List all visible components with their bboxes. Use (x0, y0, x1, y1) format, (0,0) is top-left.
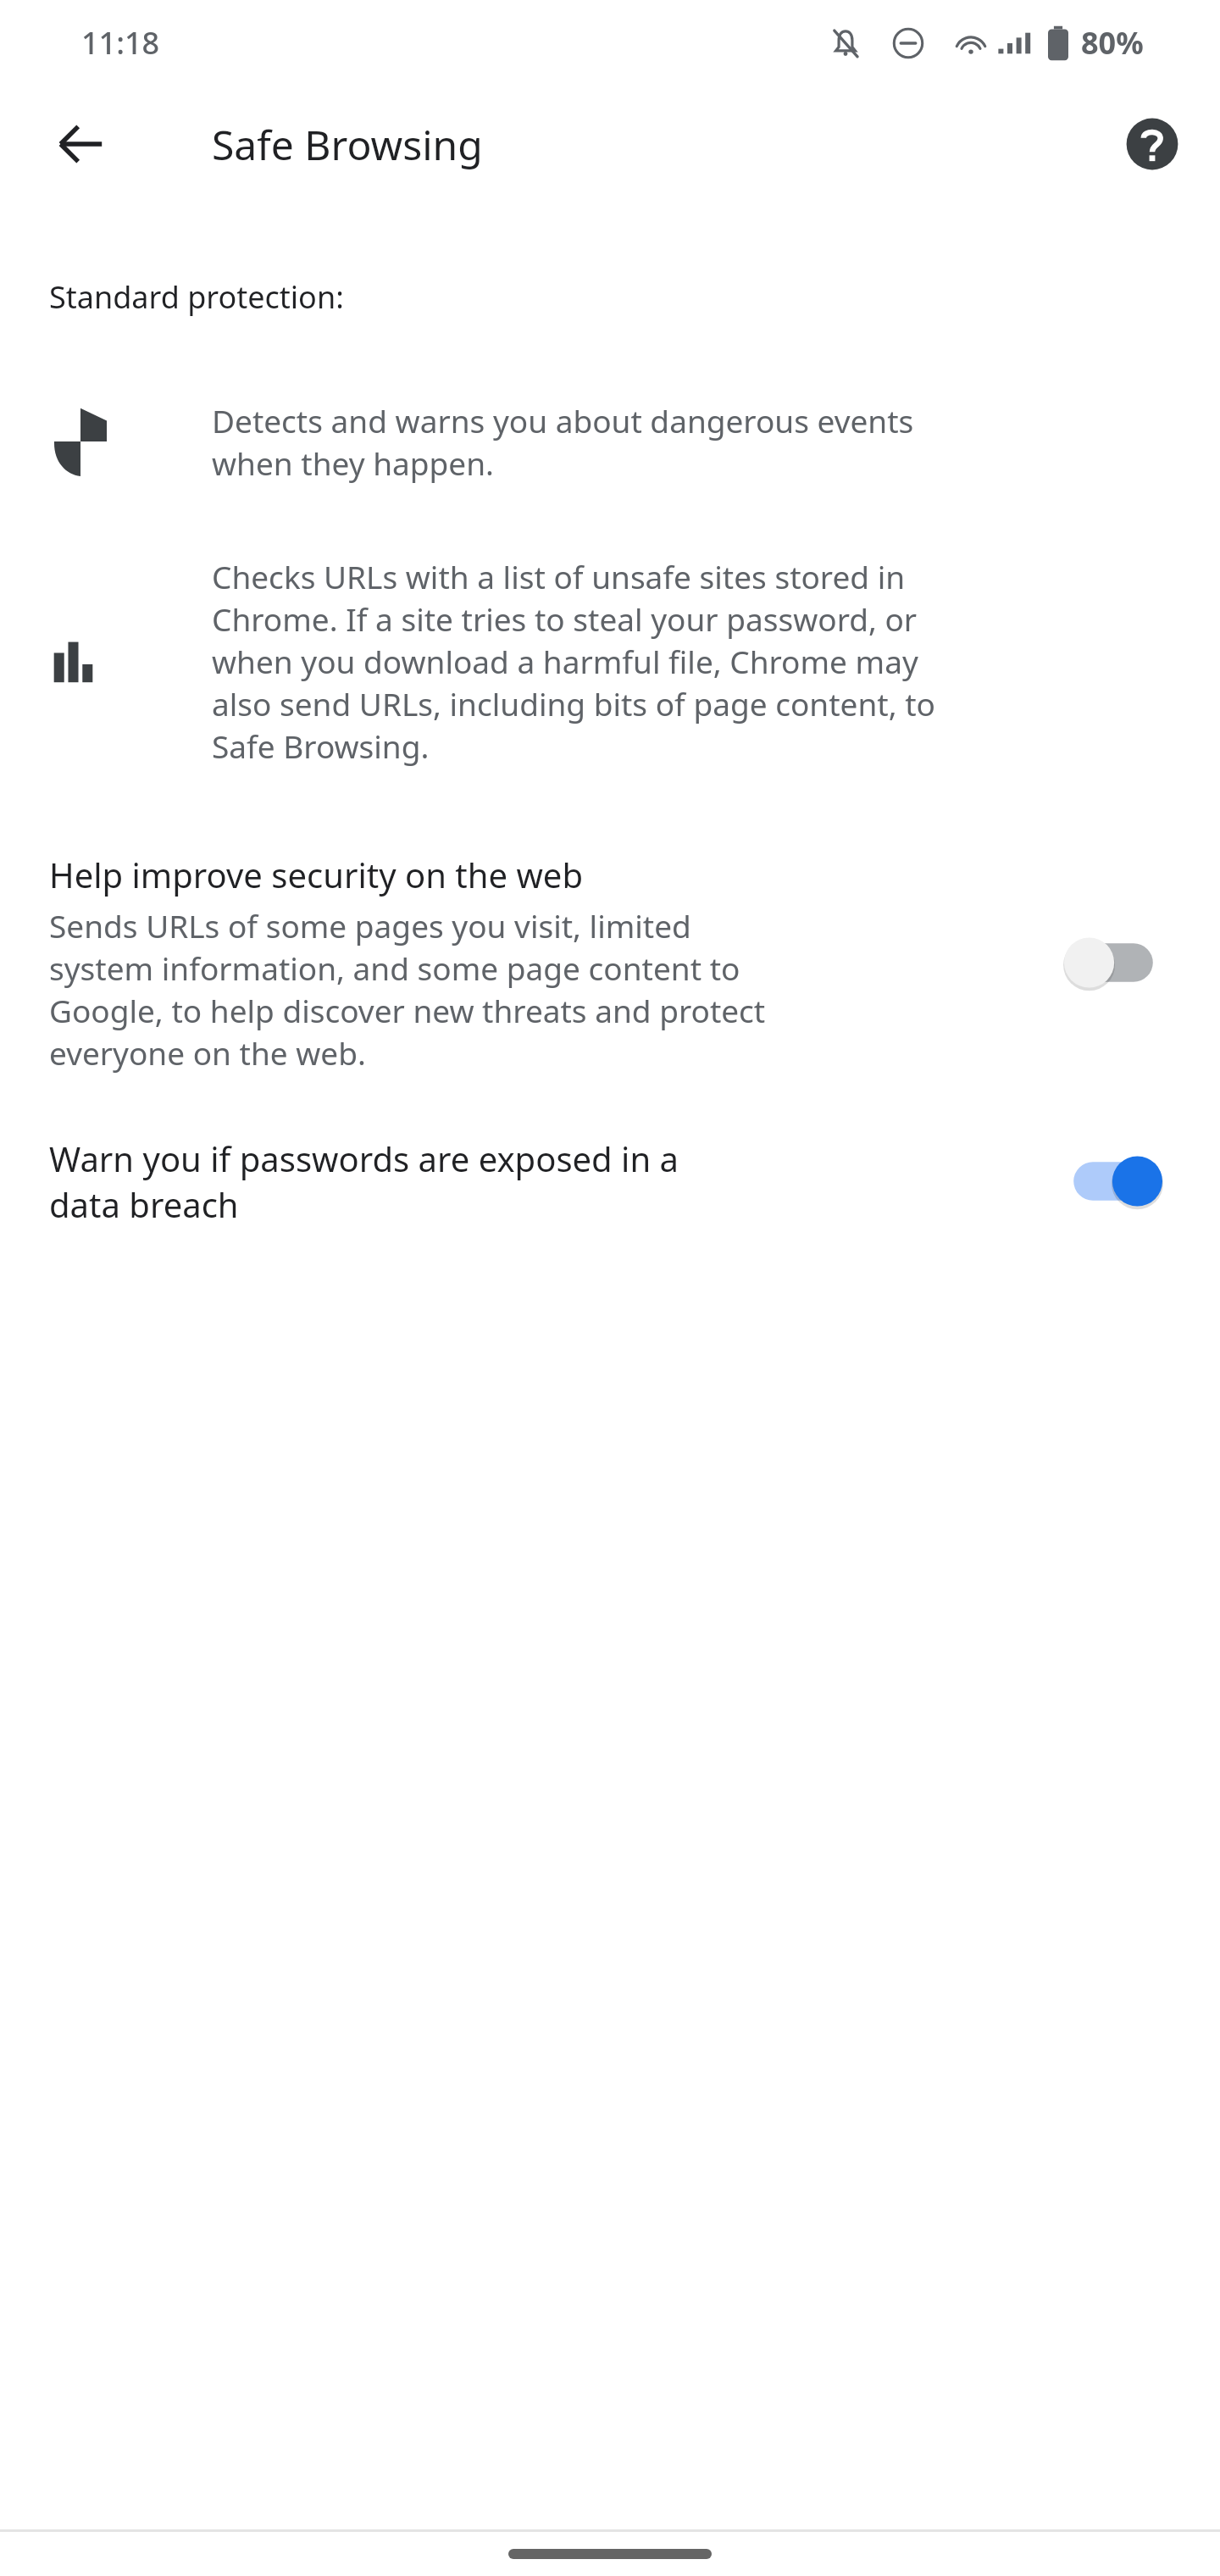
staticText: Detects and warns you about dangerous ev… (212, 399, 914, 441)
staticText: Google, to help discover new threats and… (49, 989, 766, 1031)
staticText: when they happen. (212, 441, 494, 484)
staticText: Chrome. If a site tries to steal your pa… (212, 597, 918, 640)
staticText: Help improve security on the web (49, 852, 583, 897)
button[interactable]: Back (34, 97, 127, 191)
button[interactable]: Toggle on (1054, 1135, 1173, 1228)
staticText: system information, and some page conten… (49, 947, 740, 989)
staticText: everyone on the web. (49, 1031, 366, 1074)
staticText: data breach (49, 1181, 239, 1227)
button[interactable]: Help improve security on the web (0, 852, 1220, 1074)
staticText: 11:18 (81, 22, 160, 64)
staticText: Sends URLs of some pages you visit, limi… (49, 904, 691, 947)
staticText: Checks URLs with a list of unsafe sites … (212, 555, 906, 597)
staticText: when you download a harmful file, Chrome… (212, 640, 918, 682)
staticText: 80% (1081, 22, 1144, 64)
staticText: Safe Browsing (212, 117, 483, 172)
button[interactable]: Warn you if passwords are exposed in a (0, 1135, 1220, 1228)
button[interactable]: Toggle off (1054, 916, 1173, 1009)
button[interactable]: Help (1106, 98, 1198, 190)
staticText: also send URLs, including bits of page c… (212, 682, 935, 724)
staticText: Standard protection: (49, 276, 344, 318)
staticText: Safe Browsing. (212, 724, 430, 767)
staticText: Warn you if passwords are exposed in a (49, 1135, 679, 1181)
